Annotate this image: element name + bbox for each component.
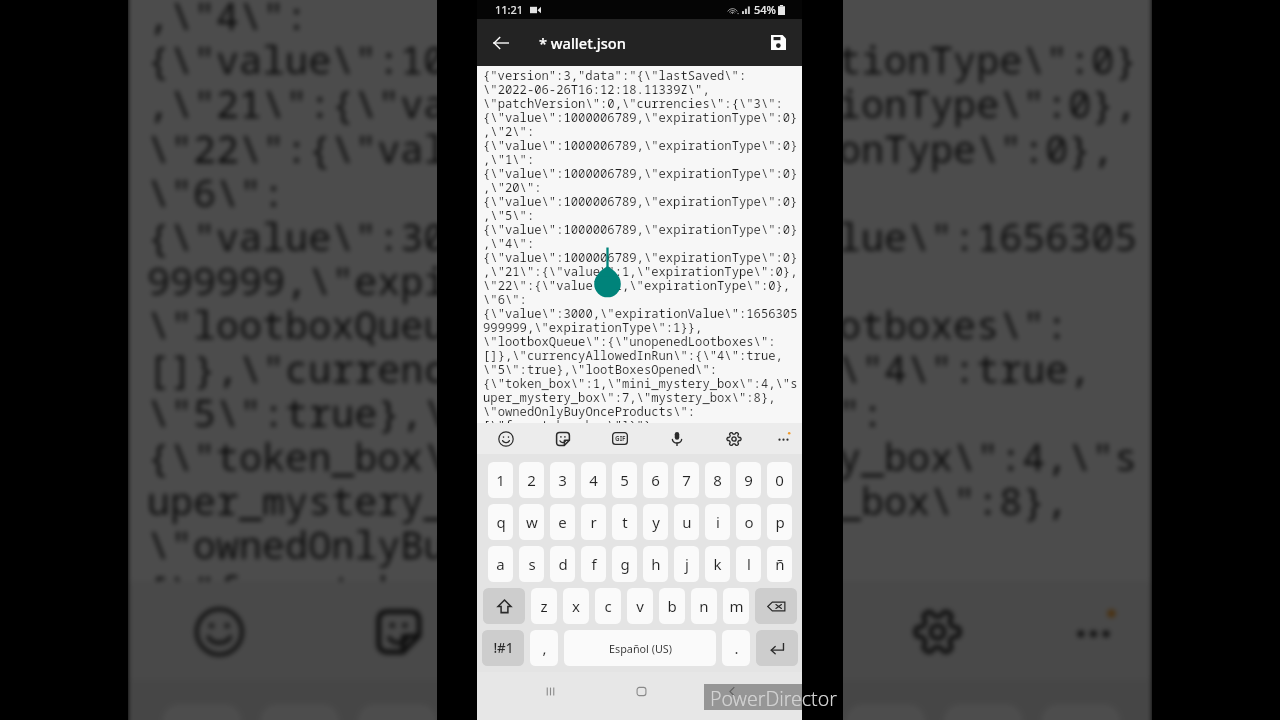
button[interactable]: i bbox=[705, 504, 730, 540]
button[interactable]: 7 bbox=[749, 704, 827, 720]
button[interactable]: 4 bbox=[581, 462, 606, 498]
button[interactable]: More options bbox=[1029, 581, 1155, 679]
button[interactable]: u bbox=[674, 504, 699, 540]
button[interactable]: Emoji bbox=[156, 581, 282, 679]
staticText: 0 bbox=[775, 470, 784, 490]
button[interactable]: 7 bbox=[674, 462, 699, 498]
staticText: v bbox=[636, 596, 644, 616]
button[interactable]: Voice input bbox=[657, 423, 697, 454]
staticText: u bbox=[682, 512, 692, 532]
button[interactable]: n bbox=[691, 588, 717, 624]
button[interactable]: f bbox=[581, 546, 606, 582]
button[interactable]: !#1 bbox=[482, 630, 524, 666]
button[interactable]: . bbox=[722, 630, 750, 666]
staticText: 1 bbox=[496, 470, 505, 490]
button[interactable]: l bbox=[736, 546, 761, 582]
button[interactable]: 1 bbox=[488, 462, 513, 498]
button[interactable]: c bbox=[595, 588, 621, 624]
button[interactable]: Backspace bbox=[755, 588, 797, 624]
staticText: PowerDirector bbox=[710, 685, 837, 712]
button[interactable]: q bbox=[488, 504, 513, 540]
button[interactable]: Back bbox=[477, 19, 524, 66]
button[interactable]: r bbox=[581, 504, 606, 540]
staticText: z bbox=[540, 596, 548, 616]
button[interactable]: d bbox=[550, 546, 575, 582]
button[interactable]: 6 bbox=[643, 462, 668, 498]
staticText: 6 bbox=[651, 470, 660, 490]
button[interactable]: 0 bbox=[767, 462, 792, 498]
button[interactable]: j bbox=[674, 546, 699, 582]
staticText: m bbox=[729, 596, 744, 616]
button[interactable]: Keyboard settings bbox=[875, 581, 1001, 679]
staticText: g bbox=[620, 554, 630, 574]
button[interactable]: b bbox=[659, 588, 685, 624]
button[interactable]: Voice input bbox=[695, 581, 821, 679]
staticText: k bbox=[713, 554, 722, 574]
button[interactable]: t bbox=[612, 504, 637, 540]
staticText: p bbox=[775, 512, 785, 532]
button[interactable]: Stickers bbox=[336, 581, 462, 679]
button[interactable]: e bbox=[550, 504, 575, 540]
button[interactable]: s bbox=[519, 546, 544, 582]
staticText: , bbox=[542, 638, 547, 658]
button[interactable]: y bbox=[643, 504, 668, 540]
button[interactable]: Back bbox=[708, 676, 756, 706]
staticText: . bbox=[734, 638, 739, 658]
button[interactable]: Keyboard settings bbox=[714, 423, 754, 454]
staticText: a bbox=[496, 554, 505, 574]
button[interactable]: x bbox=[563, 588, 589, 624]
staticText: Español (US) bbox=[609, 641, 672, 656]
staticText: 5 bbox=[620, 470, 629, 490]
button[interactable]: Emoji bbox=[486, 423, 526, 454]
staticText: w bbox=[526, 512, 538, 532]
staticText: !#1 bbox=[493, 639, 514, 657]
button[interactable]: h bbox=[643, 546, 668, 582]
staticText: 4 bbox=[589, 470, 598, 490]
button[interactable]: 4 bbox=[456, 704, 534, 720]
button[interactable]: 3 bbox=[550, 462, 575, 498]
staticText: n bbox=[699, 596, 709, 616]
button[interactable]: 6 bbox=[651, 704, 730, 720]
button[interactable]: 2 bbox=[519, 462, 544, 498]
button[interactable]: 9 bbox=[736, 462, 761, 498]
button[interactable]: GIF bbox=[515, 581, 641, 679]
staticText: o bbox=[744, 512, 754, 532]
button[interactable]: 8 bbox=[705, 462, 730, 498]
staticText: h bbox=[651, 554, 661, 574]
staticText: 54% bbox=[754, 2, 776, 17]
button[interactable]: a bbox=[488, 546, 513, 582]
staticText: 7 bbox=[682, 470, 691, 490]
staticText: 2 bbox=[527, 470, 536, 490]
button[interactable]: Recent apps bbox=[526, 676, 574, 706]
staticText: {"version":3,"data":"{\"lastSaved\": \"2… bbox=[147, 0, 1139, 581]
button[interactable]: More options bbox=[763, 423, 803, 454]
button[interactable]: 5 bbox=[612, 462, 637, 498]
button[interactable]: Save bbox=[755, 19, 802, 66]
button[interactable]: , bbox=[530, 630, 558, 666]
button[interactable]: p bbox=[767, 504, 792, 540]
staticText: t bbox=[622, 512, 628, 532]
button[interactable]: z bbox=[531, 588, 557, 624]
button[interactable]: g bbox=[612, 546, 637, 582]
button[interactable]: v bbox=[627, 588, 653, 624]
staticText: y bbox=[652, 512, 660, 532]
button[interactable]: Stickers bbox=[543, 423, 583, 454]
button[interactable]: o bbox=[736, 504, 761, 540]
button[interactable]: Enter bbox=[756, 630, 798, 666]
button[interactable]: m bbox=[723, 588, 749, 624]
button[interactable]: ñ bbox=[767, 546, 792, 582]
button[interactable]: Shift bbox=[483, 588, 525, 624]
staticText: s bbox=[528, 554, 536, 574]
button[interactable]: w bbox=[519, 504, 544, 540]
button[interactable]: Home bbox=[617, 676, 665, 706]
button[interactable]: k bbox=[705, 546, 730, 582]
button[interactable]: GIF bbox=[600, 423, 640, 454]
button[interactable]: Español (US) bbox=[564, 630, 716, 666]
